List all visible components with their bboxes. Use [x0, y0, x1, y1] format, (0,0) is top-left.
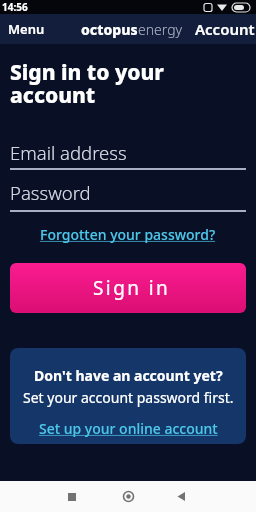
staticText: Password	[10, 180, 91, 205]
staticText: Set up your online account	[39, 419, 218, 438]
staticText: energy	[138, 20, 183, 39]
staticText: Sign in	[93, 275, 171, 301]
button[interactable]: Set up your online account	[39, 419, 218, 438]
button[interactable]: Forgotten your password?	[10, 225, 246, 244]
staticText: 14:56	[2, 0, 28, 14]
button[interactable]	[108, 481, 148, 512]
staticText: Email address	[10, 140, 127, 165]
staticText: Account	[195, 19, 255, 39]
staticText: Set your account password first.	[23, 388, 234, 407]
button[interactable]	[164, 481, 204, 512]
button[interactable]: Account	[195, 19, 255, 39]
staticText: Sign in to your account	[10, 58, 164, 109]
button[interactable]: Menu	[8, 20, 45, 38]
staticText: octopus	[81, 20, 138, 39]
staticText: Don't have an account yet?	[34, 366, 223, 385]
button[interactable]: Sign in	[10, 263, 246, 313]
button[interactable]	[52, 481, 92, 512]
staticText: Forgotten your password?	[40, 225, 216, 244]
staticText: Menu	[8, 20, 45, 38]
